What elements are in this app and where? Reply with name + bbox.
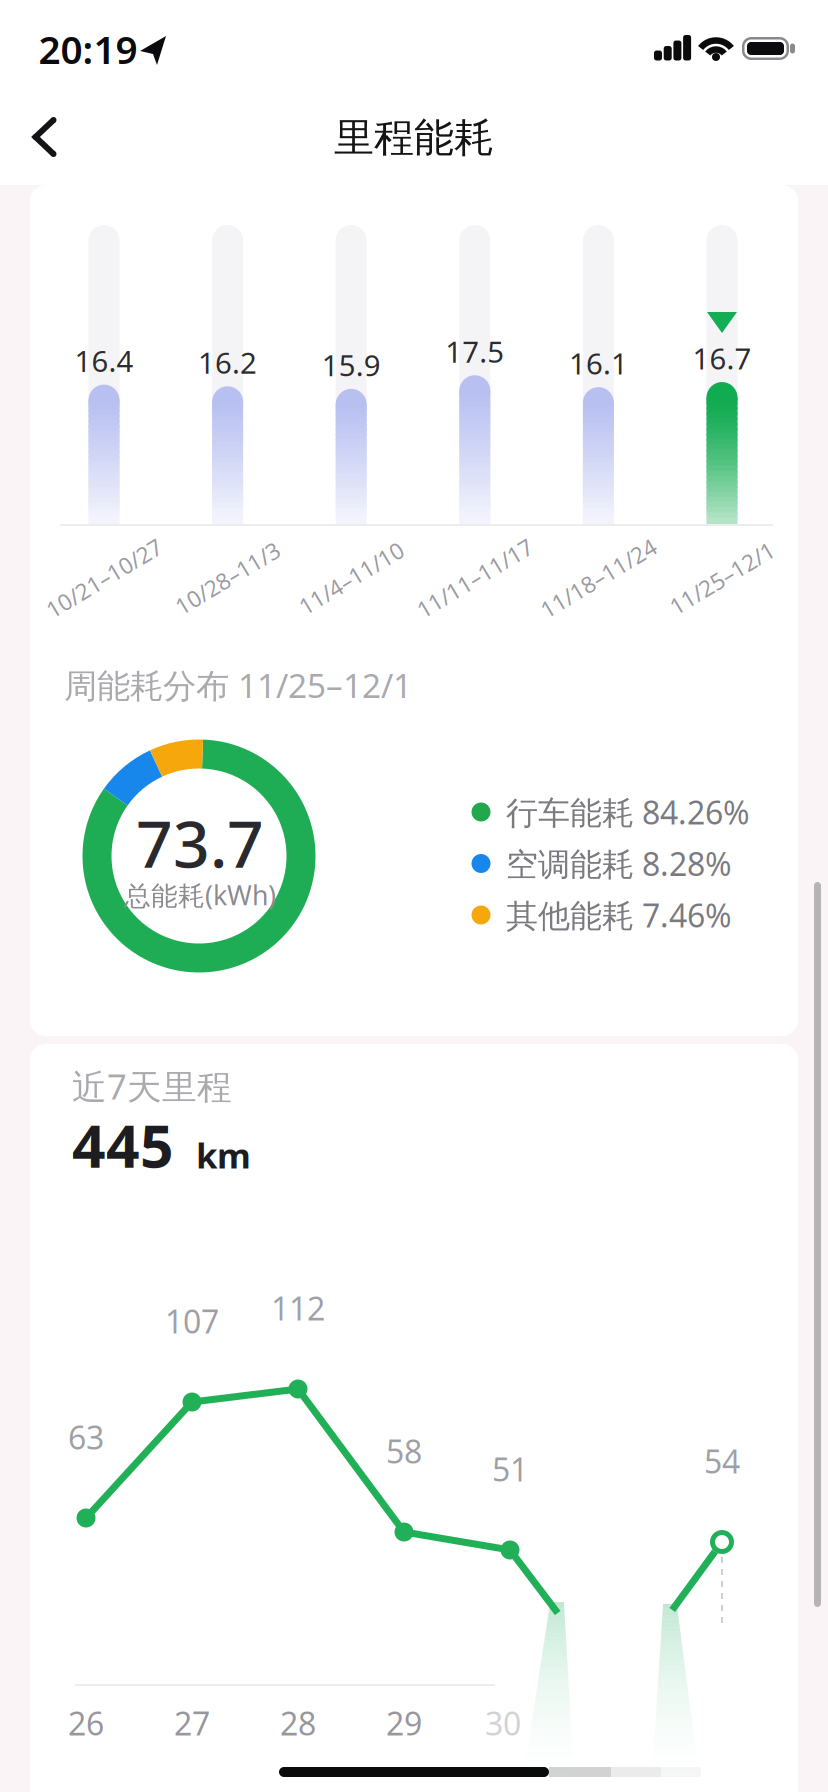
staticText: 58: [386, 1430, 422, 1472]
staticText: 112: [271, 1287, 325, 1329]
staticText: 11/18–11/24: [533, 563, 664, 593]
staticText: 10/28–11/3: [169, 563, 287, 593]
staticText: 63: [68, 1416, 104, 1458]
staticText: 16.2: [198, 343, 257, 382]
staticText: 空调能耗 8.28%: [506, 842, 732, 885]
staticText: 17.5: [445, 332, 504, 371]
staticText: 16.1: [569, 344, 628, 383]
staticText: km: [196, 1132, 251, 1178]
staticText: 其他能耗 7.46%: [506, 894, 732, 936]
staticText: 行车能耗 84.26%: [506, 791, 750, 833]
staticText: 27: [174, 1702, 210, 1744]
staticText: 周能耗分布 11/25–12/1: [64, 663, 412, 707]
staticText: 30: [485, 1702, 521, 1744]
staticText: 总能耗(kWh): [124, 877, 276, 913]
staticText: 11/11–11/17: [409, 563, 540, 593]
staticText: 16.7: [692, 339, 751, 378]
staticText: 54: [704, 1440, 740, 1482]
staticText: 15.9: [322, 345, 381, 384]
staticText: 26: [68, 1702, 104, 1744]
staticText: 里程能耗: [334, 113, 494, 162]
staticText: 107: [165, 1300, 219, 1342]
staticText: 20:19: [38, 23, 137, 75]
staticText: 73.7: [136, 800, 264, 885]
button[interactable]: [0, 93, 88, 181]
staticText: 10/21–10/27: [38, 563, 169, 593]
staticText: 16.4: [74, 341, 133, 380]
staticText: 11/4–11/10: [292, 563, 410, 593]
staticText: 445: [72, 1106, 174, 1184]
staticText: 51: [492, 1448, 528, 1490]
staticText: 11/25–12/1: [663, 563, 781, 593]
staticText: 近7天里程: [72, 1063, 232, 1109]
staticText: 29: [386, 1702, 422, 1744]
staticText: 28: [280, 1702, 316, 1744]
